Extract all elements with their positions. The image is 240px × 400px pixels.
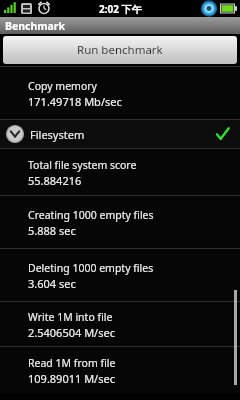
- staticText: Creating 1000 empty files: [28, 208, 154, 222]
- button[interactable]: Copy memory: [0, 67, 240, 119]
- staticText: 109.89011 M/sec: [28, 371, 115, 386]
- staticText: Deleting 1000 empty files: [28, 261, 154, 275]
- staticText: 5.888 sec: [28, 223, 76, 238]
- staticText: Copy memory: [28, 79, 97, 93]
- staticText: Run benchmark: [77, 42, 163, 58]
- staticText: 2:02 下午: [99, 2, 142, 16]
- button[interactable]: Deleting 1000 empty files: [0, 249, 240, 301]
- button[interactable]: Total file system score: [0, 149, 240, 195]
- button[interactable]: Creating 1000 empty files: [0, 196, 240, 248]
- staticText: 3.604 sec: [28, 276, 76, 291]
- button[interactable]: Write 1M into file: [0, 302, 240, 346]
- staticText: 171.49718 Mb/sec: [28, 94, 122, 109]
- staticText: 55.884216: [28, 173, 82, 188]
- staticText: Filesystem: [30, 127, 85, 142]
- staticText: 2.5406504 M/sec: [28, 325, 115, 340]
- other: Completed: [214, 126, 230, 142]
- staticText: Write 1M into file: [28, 310, 113, 324]
- button[interactable]: Collapse Filesystem: [0, 120, 240, 148]
- button[interactable]: Run benchmark: [3, 36, 237, 64]
- other: Collapse Filesystem: [6, 125, 24, 143]
- staticText: Read 1M from file: [28, 356, 116, 370]
- staticText: Benchmark: [5, 19, 66, 33]
- button[interactable]: Read 1M from file: [0, 347, 240, 393]
- staticText: Total file system score: [28, 158, 137, 172]
